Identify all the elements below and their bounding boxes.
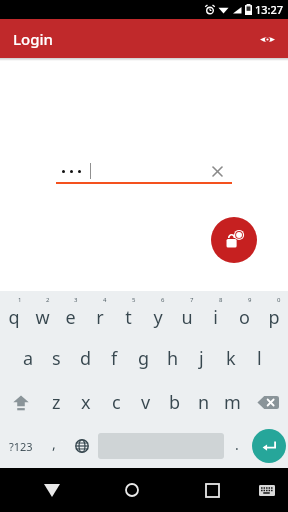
staticText: 9 <box>248 296 252 304</box>
staticText: 4 <box>103 296 107 304</box>
button[interactable]: c <box>101 380 131 424</box>
staticText: 2 <box>46 296 50 304</box>
button[interactable]: g <box>129 336 158 380</box>
button[interactable]: , <box>41 424 66 468</box>
staticText: t <box>125 305 132 330</box>
button[interactable]: Recents <box>190 468 234 512</box>
button[interactable]: . <box>224 424 250 468</box>
button[interactable]: ?123 <box>0 424 41 468</box>
staticText: 3 <box>74 296 78 304</box>
staticText: m <box>224 390 241 415</box>
button[interactable]: n <box>189 380 218 424</box>
button[interactable]: Enter <box>252 429 286 463</box>
staticText: . <box>235 435 239 454</box>
staticText: , <box>52 434 56 453</box>
button[interactable]: Back <box>30 468 74 512</box>
staticText: f <box>111 346 118 371</box>
staticText: l <box>257 346 262 371</box>
button[interactable]: s <box>42 336 71 380</box>
staticText: s <box>52 346 61 371</box>
button[interactable]: Home <box>110 468 154 512</box>
staticText: 5 <box>132 296 136 304</box>
button[interactable]: Show password <box>252 24 282 54</box>
button[interactable]: 2 <box>28 291 56 336</box>
button[interactable]: l <box>245 336 274 380</box>
button[interactable]: f <box>100 336 129 380</box>
button[interactable]: v <box>131 380 160 424</box>
button[interactable]: a <box>14 336 42 380</box>
staticText: j <box>199 346 204 371</box>
button[interactable]: 4 <box>85 291 114 336</box>
staticText: 6 <box>161 296 165 304</box>
button[interactable]: Forgot password <box>211 217 257 263</box>
staticText: o <box>239 305 250 330</box>
button[interactable]: x <box>71 380 101 424</box>
staticText: r <box>96 305 104 330</box>
staticText: c <box>112 390 121 415</box>
staticText: a <box>23 346 34 371</box>
other: Clear <box>213 167 222 176</box>
staticText: d <box>80 346 92 371</box>
staticText: y <box>153 305 163 330</box>
staticText: 7 <box>190 296 194 304</box>
button[interactable]: 0 <box>259 291 288 336</box>
button[interactable]: 7 <box>172 291 201 336</box>
button[interactable]: 5 <box>114 291 143 336</box>
staticText: w <box>35 305 50 330</box>
staticText: g <box>138 346 150 371</box>
button[interactable]: d <box>71 336 100 380</box>
button[interactable]: Switch keyboard <box>250 473 284 507</box>
button[interactable]: h <box>158 336 187 380</box>
button[interactable]: m <box>218 380 247 424</box>
staticText: 1 <box>18 296 22 304</box>
button[interactable]: b <box>160 380 189 424</box>
staticText: h <box>167 346 179 371</box>
staticText: v <box>141 390 151 415</box>
staticText: p <box>268 305 280 330</box>
staticText: 0 <box>277 296 281 304</box>
button[interactable]: k <box>216 336 245 380</box>
staticText: b <box>169 390 181 415</box>
button[interactable]: z <box>41 380 71 424</box>
staticText: q <box>8 305 20 330</box>
staticText: n <box>198 390 210 415</box>
staticText: Login <box>13 29 53 49</box>
staticText: 13:27 <box>255 2 284 17</box>
staticText: e <box>65 305 76 330</box>
staticText: k <box>226 346 236 371</box>
staticText: x <box>81 390 91 415</box>
button[interactable]: Shift <box>0 380 41 424</box>
staticText: z <box>52 390 61 415</box>
button[interactable]: Clear <box>56 160 232 184</box>
button[interactable]: 3 <box>56 291 85 336</box>
button[interactable]: 1 <box>0 291 28 336</box>
button[interactable]: 8 <box>201 291 230 336</box>
button[interactable]: 6 <box>143 291 172 336</box>
button[interactable]: 9 <box>230 291 259 336</box>
button[interactable]: j <box>187 336 216 380</box>
button[interactable]: Backspace <box>247 380 288 424</box>
staticText: 8 <box>219 296 223 304</box>
staticText: ?123 <box>9 439 33 454</box>
staticText: i <box>213 305 218 330</box>
button[interactable]: Change language <box>66 424 98 468</box>
staticText: u <box>181 305 193 330</box>
